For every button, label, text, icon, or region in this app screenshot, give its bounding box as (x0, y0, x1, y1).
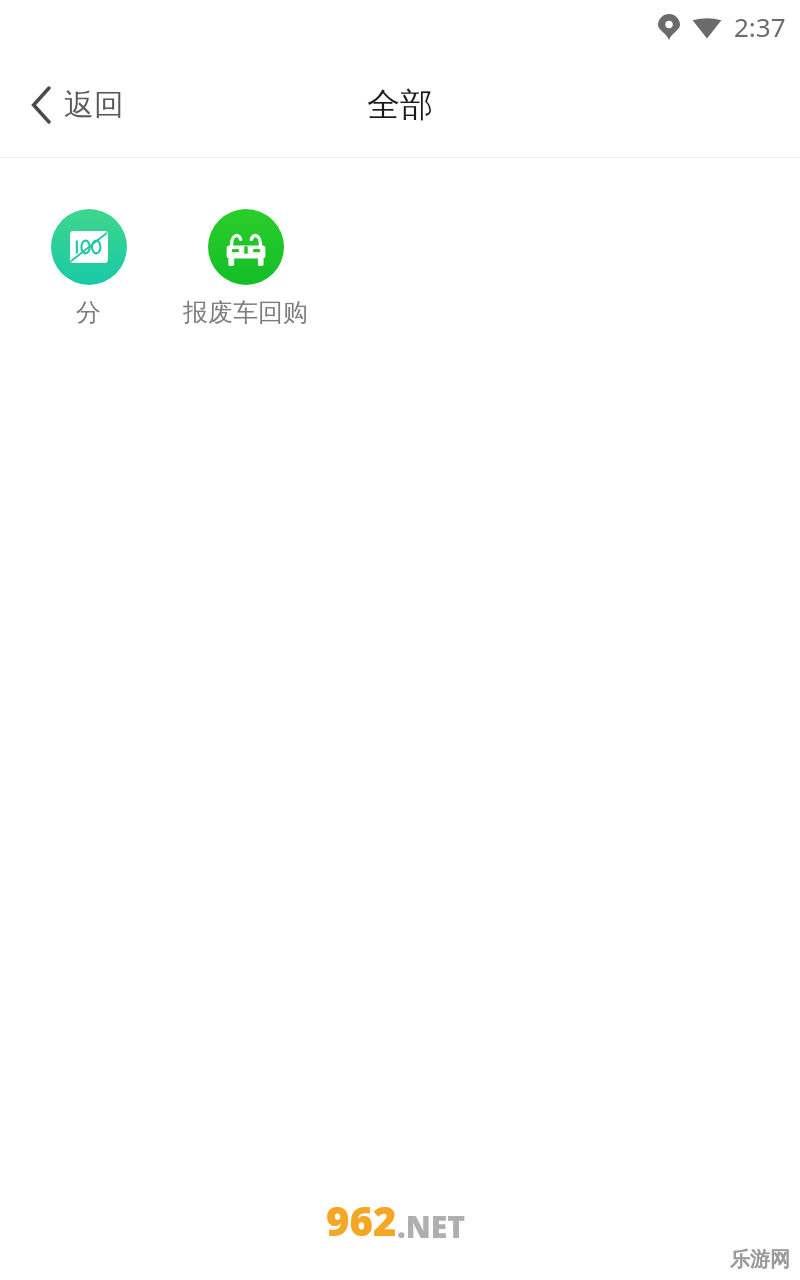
staticText: 乐游网 (730, 1247, 790, 1272)
staticText: 全部 (367, 84, 433, 126)
staticText: 返回 (64, 86, 124, 124)
button[interactable]: 返回 (26, 78, 130, 132)
staticText: .NET (397, 1206, 465, 1247)
staticText: 962 (326, 1193, 397, 1247)
staticText: 报废车回购 (183, 297, 308, 328)
staticText: 分 (76, 297, 101, 328)
button[interactable]: 报废车回购 (167, 209, 324, 328)
button[interactable]: 分 (10, 209, 167, 328)
staticText: 2:37 (734, 9, 786, 44)
